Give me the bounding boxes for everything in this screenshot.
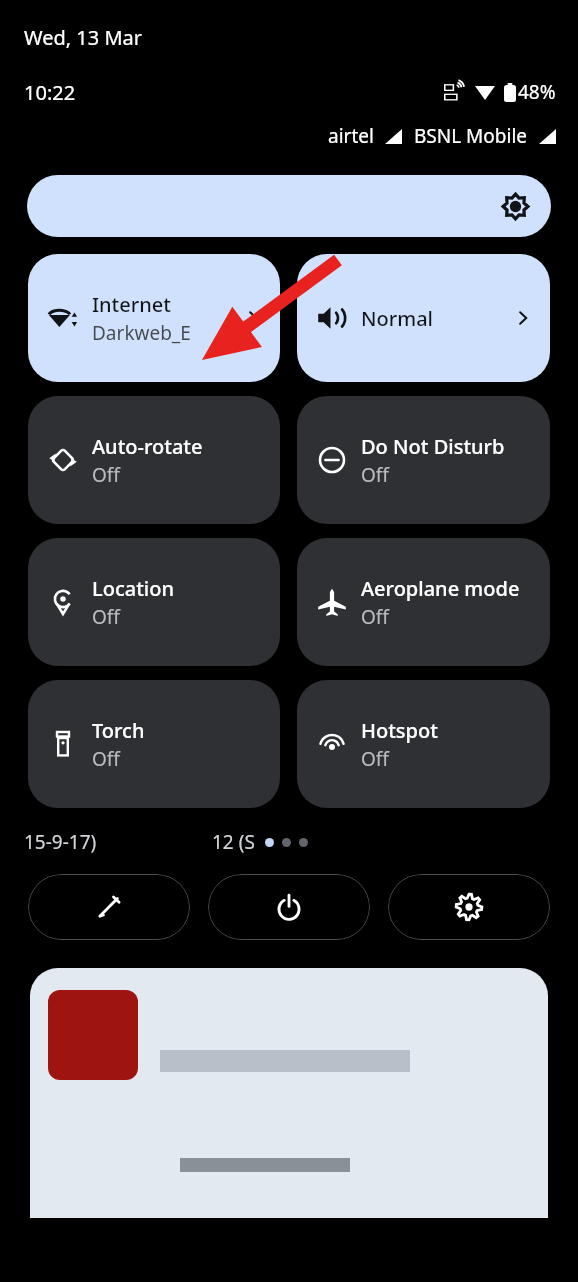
staticText: Darkweb_E (92, 320, 191, 346)
button[interactable]: Do Not Disturb (297, 396, 550, 524)
button[interactable]: Aeroplane mode (297, 538, 550, 666)
button[interactable]: Location (28, 538, 280, 666)
staticText: Off (361, 604, 389, 630)
staticText: Do Not Disturb (361, 433, 505, 460)
staticText: Off (361, 462, 389, 488)
button[interactable]: Internet (28, 254, 280, 382)
button[interactable]: Brightness (27, 175, 551, 237)
staticText: Auto-rotate (92, 433, 203, 460)
staticText: Internet (92, 291, 171, 318)
button[interactable]: Power (208, 874, 370, 940)
button[interactable]: Hotspot (297, 680, 550, 808)
button[interactable] (30, 968, 548, 1218)
staticText: 15-9-17) (24, 829, 97, 855)
staticText: 10:22 (24, 79, 76, 106)
staticText: Off (361, 746, 389, 772)
button[interactable]: Settings (388, 874, 550, 940)
staticText: Hotspot (361, 717, 438, 744)
button[interactable]: Auto-rotate (28, 396, 280, 524)
button[interactable]: Edit (28, 874, 190, 940)
staticText: Off (92, 746, 120, 772)
button[interactable]: Normal (297, 254, 550, 382)
staticText: airtel (328, 123, 374, 149)
staticText: Off (92, 462, 120, 488)
staticText: Torch (92, 717, 145, 744)
staticText: Normal (361, 305, 433, 332)
staticText: Aeroplane mode (361, 575, 520, 602)
staticText: BSNL Mobile (414, 123, 528, 149)
staticText: Wed, 13 Mar (24, 24, 143, 51)
staticText: Location (92, 575, 174, 602)
staticText: 48% (518, 79, 556, 105)
button[interactable]: Torch (28, 680, 280, 808)
staticText: 12 (S (212, 829, 255, 855)
staticText: Off (92, 604, 120, 630)
